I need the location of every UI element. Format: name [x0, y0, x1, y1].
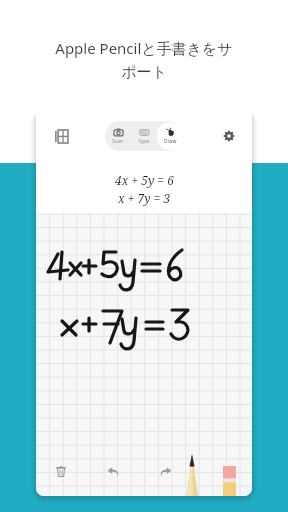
- button[interactable]: Table: [46, 121, 76, 151]
- button[interactable]: Draw: [157, 121, 183, 151]
- button[interactable]: Undo: [98, 456, 128, 486]
- staticText: x + 7y = 3: [118, 190, 171, 206]
- button[interactable]: Type: [131, 121, 157, 151]
- button[interactable]: Redo: [150, 456, 180, 486]
- button[interactable]: Delete: [46, 456, 76, 486]
- button[interactable]: Eraser: [218, 446, 240, 496]
- button[interactable]: Scan: [105, 121, 131, 151]
- button[interactable]: Settings: [215, 122, 243, 150]
- staticText: Scan: [112, 138, 124, 145]
- staticText: Type: [138, 138, 150, 145]
- staticText: ポート: [121, 63, 167, 82]
- button[interactable]: Pencil: [180, 446, 204, 496]
- staticText: 4x + 5y = 6: [115, 172, 174, 188]
- staticText: Draw: [164, 138, 177, 145]
- staticText: Apple Pencilと手書きをサ: [55, 38, 233, 58]
